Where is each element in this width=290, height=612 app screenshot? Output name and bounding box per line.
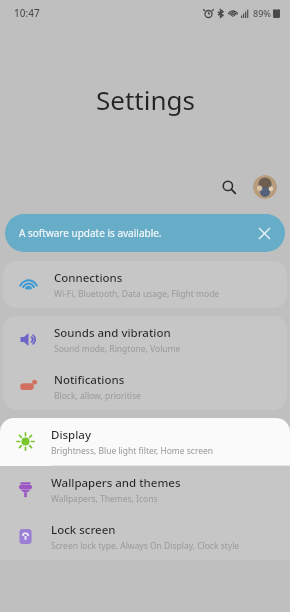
button[interactable]: Search — [214, 172, 244, 202]
staticText: 10:47 — [14, 6, 40, 20]
button[interactable]: Profile — [253, 175, 277, 199]
button[interactable]: Notifications — [3, 363, 287, 410]
button[interactable]: A software update is available. — [5, 214, 285, 252]
staticText: Wi-Fi, Bluetooth, Data usage, Flight mod… — [54, 288, 220, 300]
staticText: Sounds and vibration — [54, 325, 171, 341]
button[interactable]: Display — [0, 418, 290, 465]
staticText: Brightness, Blue light filter, Home scre… — [51, 445, 214, 457]
staticText: Block, allow, prioritise — [54, 390, 141, 402]
button[interactable]: Lock screen — [0, 513, 290, 560]
staticText: Connections — [54, 270, 123, 286]
button[interactable]: Connections — [3, 261, 287, 308]
staticText: Notifications — [54, 372, 125, 388]
staticText: Wallpapers and themes — [51, 475, 181, 491]
staticText: Display — [51, 427, 91, 443]
staticText: 89% — [253, 7, 271, 19]
button[interactable]: Dismiss update notice — [253, 222, 275, 244]
staticText: Settings — [96, 82, 195, 117]
staticText: Sound mode, Ringtone, Volume — [54, 343, 181, 355]
staticText: Screen lock type, Always On Display, Clo… — [51, 540, 240, 552]
button[interactable]: Sounds and vibration — [3, 316, 287, 363]
staticText: Lock screen — [51, 522, 116, 538]
staticText: A software update is available. — [19, 226, 162, 240]
staticText: Wallpapers, Themes, Icons — [51, 493, 158, 505]
button[interactable]: Wallpapers and themes — [0, 466, 290, 513]
